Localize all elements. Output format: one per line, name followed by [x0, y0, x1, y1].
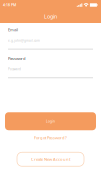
staticText: Login: [44, 13, 57, 20]
staticText: e.g.john@gmail.com: [8, 38, 40, 43]
staticText: Password: [8, 67, 21, 71]
button[interactable]: Login: [5, 112, 96, 130]
button[interactable]: Forgot Password?: [8, 134, 93, 141]
staticText: Create New Account: [31, 156, 70, 162]
staticText: Email: [8, 27, 18, 32]
staticText: Login: [46, 119, 55, 123]
staticText: Password: [8, 56, 25, 61]
button[interactable]: Create New Account: [17, 152, 84, 166]
staticText: Forgot Password?: [34, 135, 67, 140]
staticText: 4:18 PM: [3, 3, 16, 7]
